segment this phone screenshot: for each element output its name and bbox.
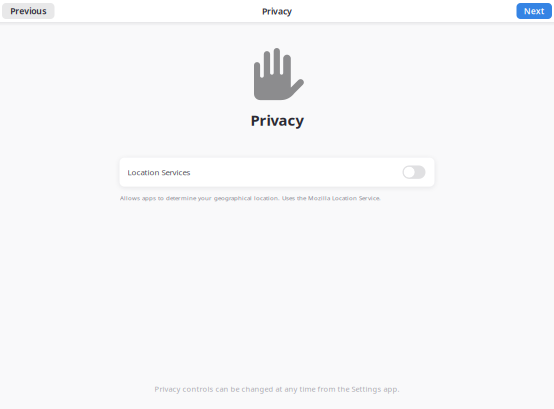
staticText: Privacy controls can be changed at any t… [154,384,399,394]
staticText: Location Services [127,167,190,178]
button[interactable]: Previous [2,3,54,19]
staticText: Privacy [250,110,303,130]
button[interactable]: Location Services [402,165,425,179]
button[interactable]: Next [516,3,552,19]
staticText: Allows apps to determine your geographic… [120,194,381,202]
staticText: Privacy [262,5,292,17]
staticText: Next [524,5,545,17]
staticText: Previous [10,5,46,17]
